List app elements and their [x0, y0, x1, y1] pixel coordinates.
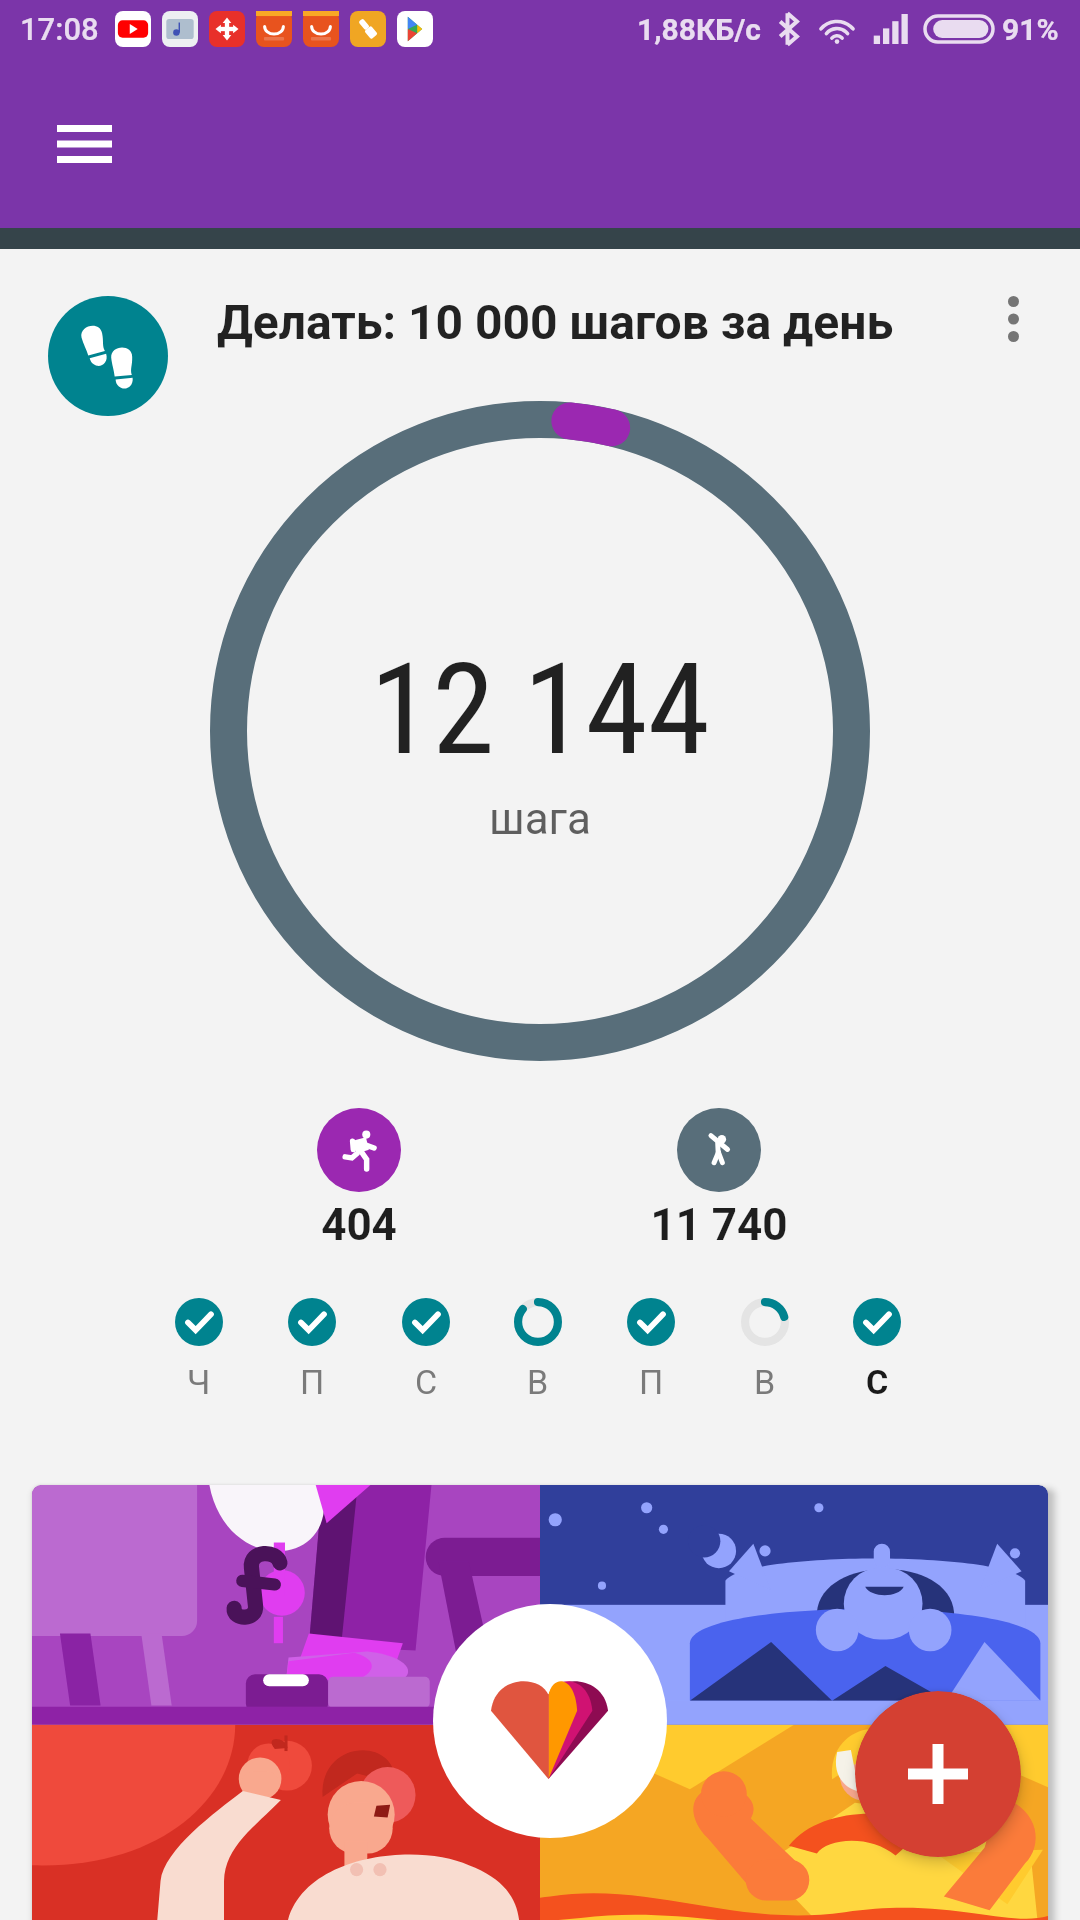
button[interactable]: Running [317, 1108, 401, 1192]
staticText: 404 [321, 1199, 397, 1251]
staticText: 12 144 [370, 636, 710, 784]
button[interactable]: Google Fit [433, 1604, 667, 1838]
button[interactable]: В [500, 1291, 576, 1403]
button[interactable]: Ч [161, 1291, 237, 1403]
staticText: Делать: 10 000 шагов за день [217, 294, 894, 350]
button[interactable]: More options [977, 283, 1049, 355]
button[interactable] [32, 1485, 1048, 1920]
staticText: С [866, 1362, 889, 1402]
staticText: шага [489, 793, 591, 845]
staticText: 1,88КБ/с [637, 12, 761, 47]
button[interactable]: С [839, 1291, 915, 1403]
staticText: В [527, 1362, 549, 1402]
button[interactable]: Add [855, 1691, 1021, 1857]
staticText: П [300, 1362, 325, 1402]
staticText: 91% [1002, 12, 1059, 47]
button[interactable]: Menu [22, 109, 146, 179]
staticText: 11 740 [650, 1199, 788, 1251]
button[interactable]: Walking [677, 1108, 761, 1192]
staticText: В [754, 1362, 776, 1402]
button[interactable]: Steps goal [48, 296, 168, 416]
staticText: 17:08 [20, 11, 99, 47]
button[interactable]: П [274, 1291, 350, 1403]
button[interactable]: С [388, 1291, 464, 1403]
button[interactable]: В [727, 1291, 803, 1403]
staticText: С [415, 1362, 438, 1402]
button[interactable]: П [613, 1291, 689, 1403]
staticText: Ч [187, 1362, 211, 1402]
staticText: П [639, 1362, 664, 1402]
